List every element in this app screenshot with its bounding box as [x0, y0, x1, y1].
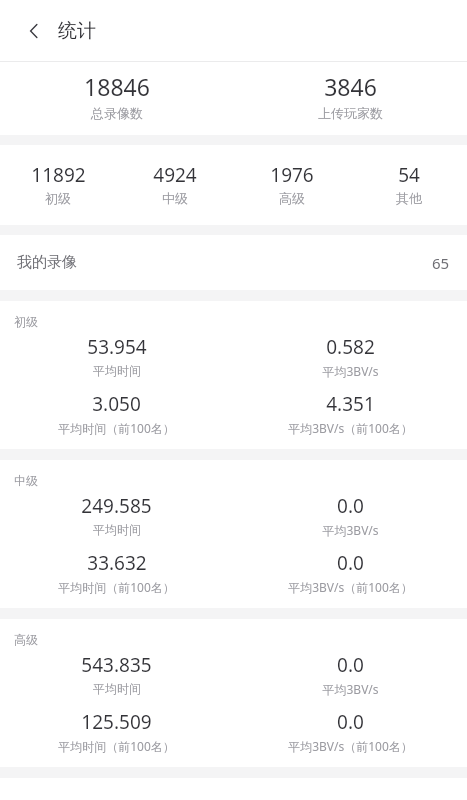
staticText: 平均时间 [93, 363, 141, 378]
staticText: 统计 [58, 19, 96, 43]
staticText: 平均3BV/s（前100名） [288, 579, 413, 595]
staticText: 中级 [162, 190, 188, 206]
staticText: 3.050 [92, 391, 141, 417]
staticText: 上传玩家数 [318, 105, 383, 121]
staticText: 平均3BV/s（前100名） [288, 420, 413, 436]
staticText: 0.582 [326, 334, 375, 360]
staticText: 54 [398, 162, 420, 188]
staticText: 平均3BV/s（前100名） [288, 738, 413, 754]
staticText: 0.0 [337, 493, 364, 519]
staticText: 平均时间 [93, 681, 141, 696]
staticText: 1976 [270, 162, 314, 188]
button[interactable]: Back [12, 9, 56, 53]
staticText: 0.0 [337, 709, 364, 735]
staticText: 平均时间（前100名） [58, 579, 175, 595]
staticText: 4.351 [326, 391, 375, 417]
staticText: 11892 [31, 162, 86, 188]
staticText: 其他 [396, 190, 422, 206]
staticText: 平均3BV/s [322, 522, 379, 538]
staticText: 65 [432, 253, 450, 273]
staticText: 初级 [45, 190, 71, 206]
staticText: 平均时间 [93, 522, 141, 537]
staticText: 0.0 [337, 550, 364, 576]
staticText: 4924 [153, 162, 197, 188]
staticText: 中级 [14, 473, 38, 488]
staticText: 平均3BV/s [322, 363, 379, 379]
staticText: 高级 [279, 190, 305, 206]
staticText: 平均时间（前100名） [58, 738, 175, 754]
button[interactable]: 我的录像 [0, 235, 467, 290]
staticText: 249.585 [81, 493, 152, 519]
staticText: 平均时间（前100名） [58, 420, 175, 436]
staticText: 125.509 [81, 709, 152, 735]
staticText: 18846 [84, 71, 150, 102]
staticText: 3846 [324, 71, 377, 102]
staticText: 平均3BV/s [322, 681, 379, 697]
staticText: 初级 [14, 314, 38, 329]
staticText: 53.954 [87, 334, 147, 360]
staticText: 高级 [14, 632, 38, 647]
staticText: 总录像数 [91, 105, 143, 121]
staticText: 我的录像 [17, 253, 77, 272]
staticText: 33.632 [87, 550, 147, 576]
staticText: 0.0 [337, 652, 364, 678]
staticText: 543.835 [81, 652, 152, 678]
